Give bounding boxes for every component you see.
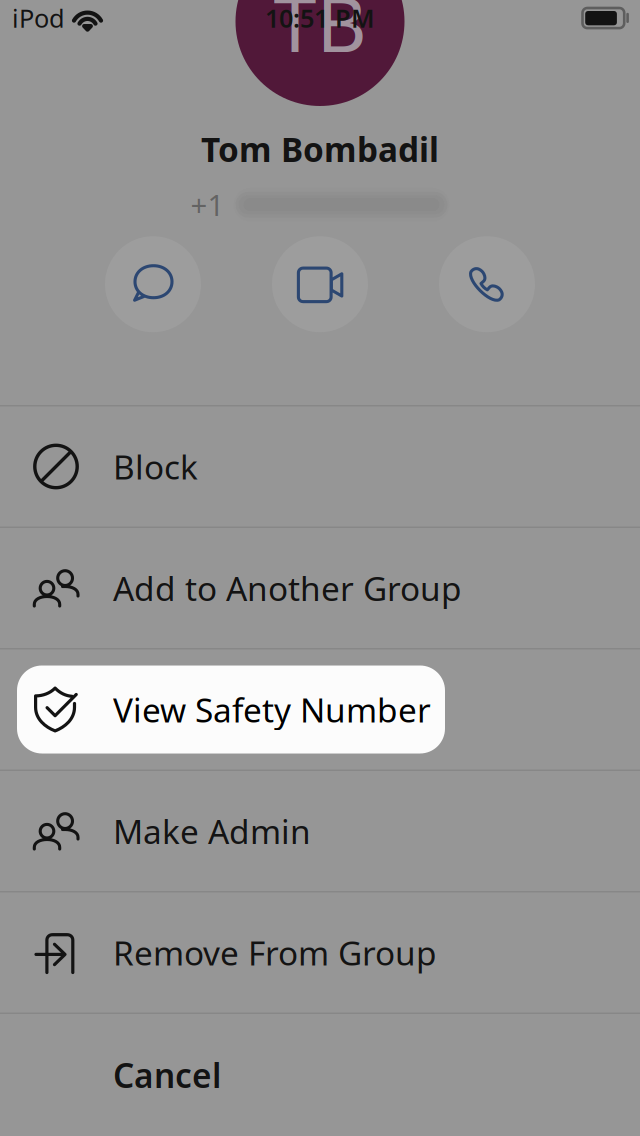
staticText: 10:51 PM [265, 1, 375, 35]
button[interactable]: Add to Another Group [0, 528, 640, 648]
button[interactable]: View Safety Number [0, 649, 640, 769]
button[interactable]: Message [105, 236, 201, 332]
button[interactable]: Voice call [439, 236, 535, 332]
staticText: +1 [190, 185, 224, 224]
staticText: Cancel [113, 1053, 221, 1097]
button[interactable]: Make Admin [0, 771, 640, 891]
staticText: Remove From Group [113, 930, 437, 975]
staticText: Tom Bombadil [201, 127, 439, 171]
staticText: Block [113, 444, 198, 489]
staticText: View Safety Number [113, 687, 431, 732]
button[interactable]: Video call [272, 236, 368, 332]
staticText: iPod [12, 1, 65, 35]
staticText: TB [273, 0, 366, 74]
staticText: Add to Another Group [113, 566, 462, 610]
staticText: Make Admin [113, 809, 311, 853]
button[interactable]: Cancel [0, 1014, 640, 1136]
button[interactable]: Remove From Group [0, 892, 640, 1012]
button[interactable]: Block [0, 406, 640, 526]
